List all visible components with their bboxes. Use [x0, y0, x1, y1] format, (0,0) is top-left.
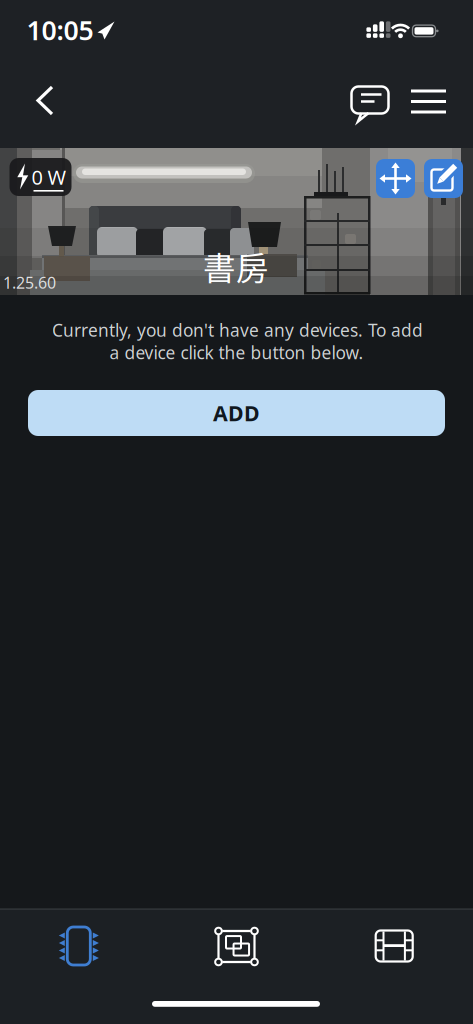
button[interactable] — [376, 159, 415, 198]
button[interactable]: 0 W — [9, 158, 71, 196]
staticText: 1.25.60 — [3, 272, 56, 293]
button[interactable] — [346, 80, 394, 126]
staticText: 10:05 — [26, 12, 93, 48]
staticText: 書房 — [203, 242, 269, 290]
staticText: a device click the button below. — [109, 341, 363, 364]
button[interactable] — [23, 80, 67, 122]
staticText: ADD — [213, 399, 260, 427]
button[interactable]: ADD — [28, 390, 445, 436]
staticText: Currently, you don't have any devices. T… — [52, 318, 423, 341]
button[interactable] — [158, 910, 315, 990]
button[interactable] — [316, 910, 473, 990]
staticText: 0 W — [31, 164, 66, 190]
button[interactable] — [404, 79, 452, 123]
button[interactable] — [424, 159, 463, 198]
button[interactable] — [0, 910, 157, 990]
